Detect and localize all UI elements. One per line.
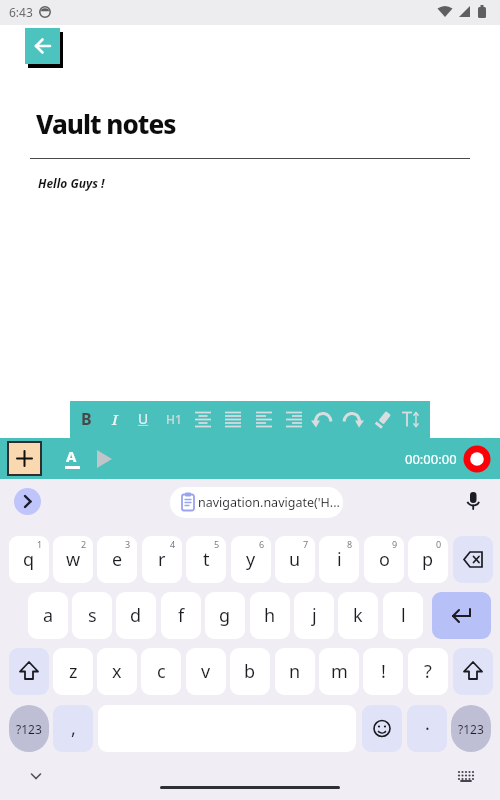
staticText: n (289, 659, 301, 684)
button[interactable]: f (161, 592, 201, 639)
staticText: 4 (170, 538, 176, 550)
button[interactable]: , (53, 705, 93, 752)
staticText: z (69, 659, 78, 684)
staticText: navigation.navigate('H... (198, 494, 340, 511)
button[interactable]: n (275, 648, 315, 695)
staticText: q (23, 547, 35, 572)
staticText: v (201, 659, 211, 684)
staticText: a (43, 603, 54, 628)
button[interactable]: c (141, 648, 181, 695)
button[interactable]: ! (363, 648, 403, 695)
staticText: h (264, 603, 276, 628)
staticText: 1 (37, 538, 43, 550)
button[interactable]: m (319, 648, 359, 695)
button[interactable]: A (62, 445, 86, 473)
button[interactable]: t (186, 536, 226, 583)
staticText: k (353, 603, 363, 628)
button[interactable]: q (9, 536, 49, 583)
button[interactable]: k (338, 592, 378, 639)
button[interactable]: · (407, 705, 447, 752)
staticText: j (312, 603, 317, 628)
staticText: A (66, 446, 77, 466)
staticText: , (71, 716, 76, 741)
staticText: f (178, 603, 185, 628)
staticText: 5 (214, 538, 220, 550)
button[interactable] (453, 648, 493, 695)
button[interactable]: s (72, 592, 112, 639)
staticText: t (203, 547, 210, 572)
button[interactable]: ? (408, 648, 448, 695)
button[interactable] (362, 705, 402, 752)
staticText: o (379, 547, 390, 572)
staticText: U (138, 409, 149, 428)
staticText: b (244, 659, 256, 684)
staticText: r (158, 547, 166, 572)
button[interactable]: y (231, 536, 271, 583)
button[interactable]: h (250, 592, 290, 639)
staticText: d (130, 603, 142, 628)
button[interactable] (432, 592, 491, 639)
button[interactable]: u (275, 536, 315, 583)
staticText: Vault notes (36, 106, 176, 141)
button[interactable] (25, 28, 60, 64)
staticText: ?123 (16, 721, 42, 737)
button[interactable]: e (97, 536, 137, 583)
button[interactable]: d (116, 592, 156, 639)
button[interactable]: v (186, 648, 226, 695)
button[interactable]: i (319, 536, 359, 583)
staticText: ! (381, 659, 386, 684)
button[interactable]: ?123 (451, 705, 491, 752)
staticText: g (219, 603, 231, 628)
staticText: 0 (436, 538, 442, 550)
button[interactable] (95, 449, 114, 469)
staticText: 6 (259, 538, 265, 550)
staticText: m (331, 659, 348, 684)
button[interactable] (453, 536, 493, 583)
button[interactable]: w (53, 536, 93, 583)
button[interactable]: r (142, 536, 182, 583)
staticText: s (88, 603, 97, 628)
button[interactable] (14, 488, 41, 515)
staticText: 00:00:00 (405, 450, 457, 468)
staticText: 7 (303, 538, 309, 550)
button[interactable] (462, 490, 484, 514)
staticText: 9 (392, 538, 398, 550)
staticText: 3 (125, 538, 131, 550)
staticText: 8 (347, 538, 353, 550)
staticText: ? (424, 659, 432, 684)
staticText: H1 (166, 411, 182, 427)
staticText: ?123 (458, 721, 484, 737)
staticText: c (157, 659, 166, 684)
button[interactable]: z (53, 648, 93, 695)
button[interactable]: b (230, 648, 270, 695)
button[interactable]: g (205, 592, 245, 639)
button[interactable] (28, 769, 44, 783)
button[interactable]: navigation.navigate('H... (170, 487, 343, 518)
button[interactable]: j (294, 592, 334, 639)
staticText: · (425, 716, 430, 741)
button[interactable]: ?123 (9, 705, 49, 752)
staticText: x (112, 659, 122, 684)
staticText: i (337, 547, 342, 572)
staticText: u (289, 547, 301, 572)
staticText: w (66, 547, 81, 572)
staticText: e (112, 547, 123, 572)
staticText: I (112, 409, 118, 429)
staticText: 2 (81, 538, 87, 550)
staticText: Hello Guys ! (38, 175, 105, 191)
button[interactable] (463, 445, 491, 473)
button[interactable]: l (383, 592, 423, 639)
button[interactable]: a (28, 592, 68, 639)
button[interactable]: p (408, 536, 448, 583)
button[interactable] (455, 768, 477, 784)
staticText: l (401, 603, 406, 628)
staticText: B (81, 408, 92, 430)
button[interactable]: x (97, 648, 137, 695)
button[interactable]: o (364, 536, 404, 583)
staticText: y (246, 547, 256, 572)
staticText: p (422, 547, 434, 572)
staticText: 6:43 (9, 4, 33, 20)
button[interactable] (9, 648, 49, 695)
button[interactable] (8, 442, 41, 475)
